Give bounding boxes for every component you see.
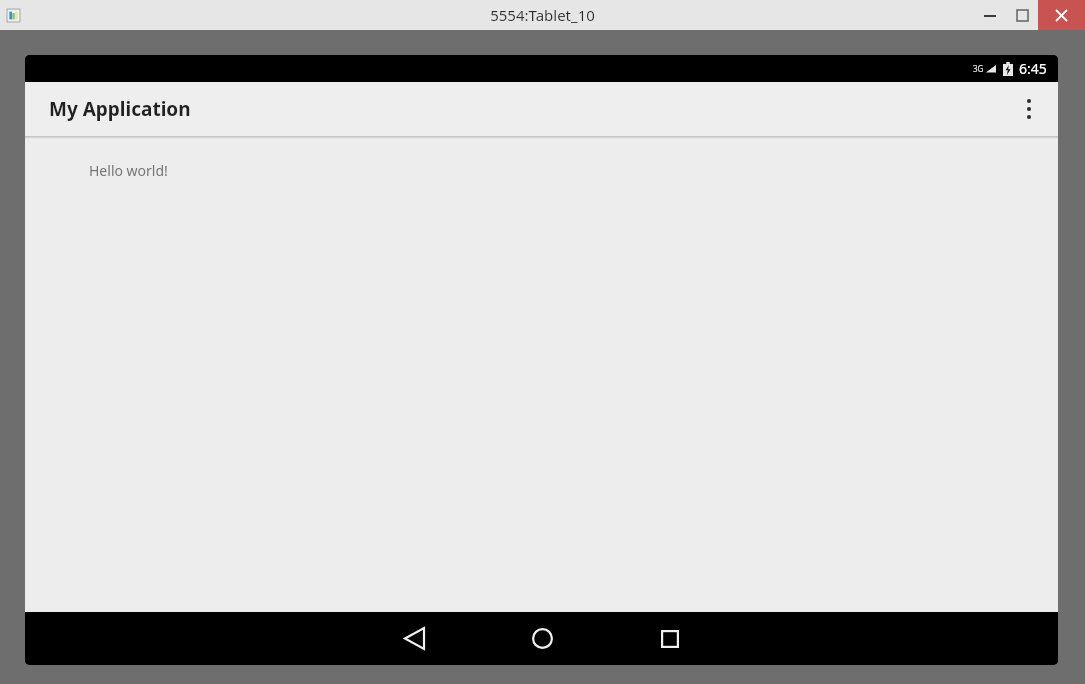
staticText: 5554:Tablet_10: [490, 5, 595, 25]
staticText: Hello world!: [89, 161, 168, 180]
button[interactable]: Maximize: [1006, 0, 1038, 30]
button[interactable]: Minimize: [974, 0, 1006, 30]
staticText: My Application: [49, 96, 191, 122]
button[interactable]: Home: [510, 612, 574, 665]
button[interactable]: Close: [1038, 0, 1085, 30]
button[interactable]: More options: [1008, 88, 1050, 130]
button[interactable]: Back: [382, 612, 446, 665]
button[interactable]: Recent apps: [638, 612, 702, 665]
staticText: 3G: [973, 63, 984, 74]
staticText: 6:45: [1019, 59, 1047, 78]
